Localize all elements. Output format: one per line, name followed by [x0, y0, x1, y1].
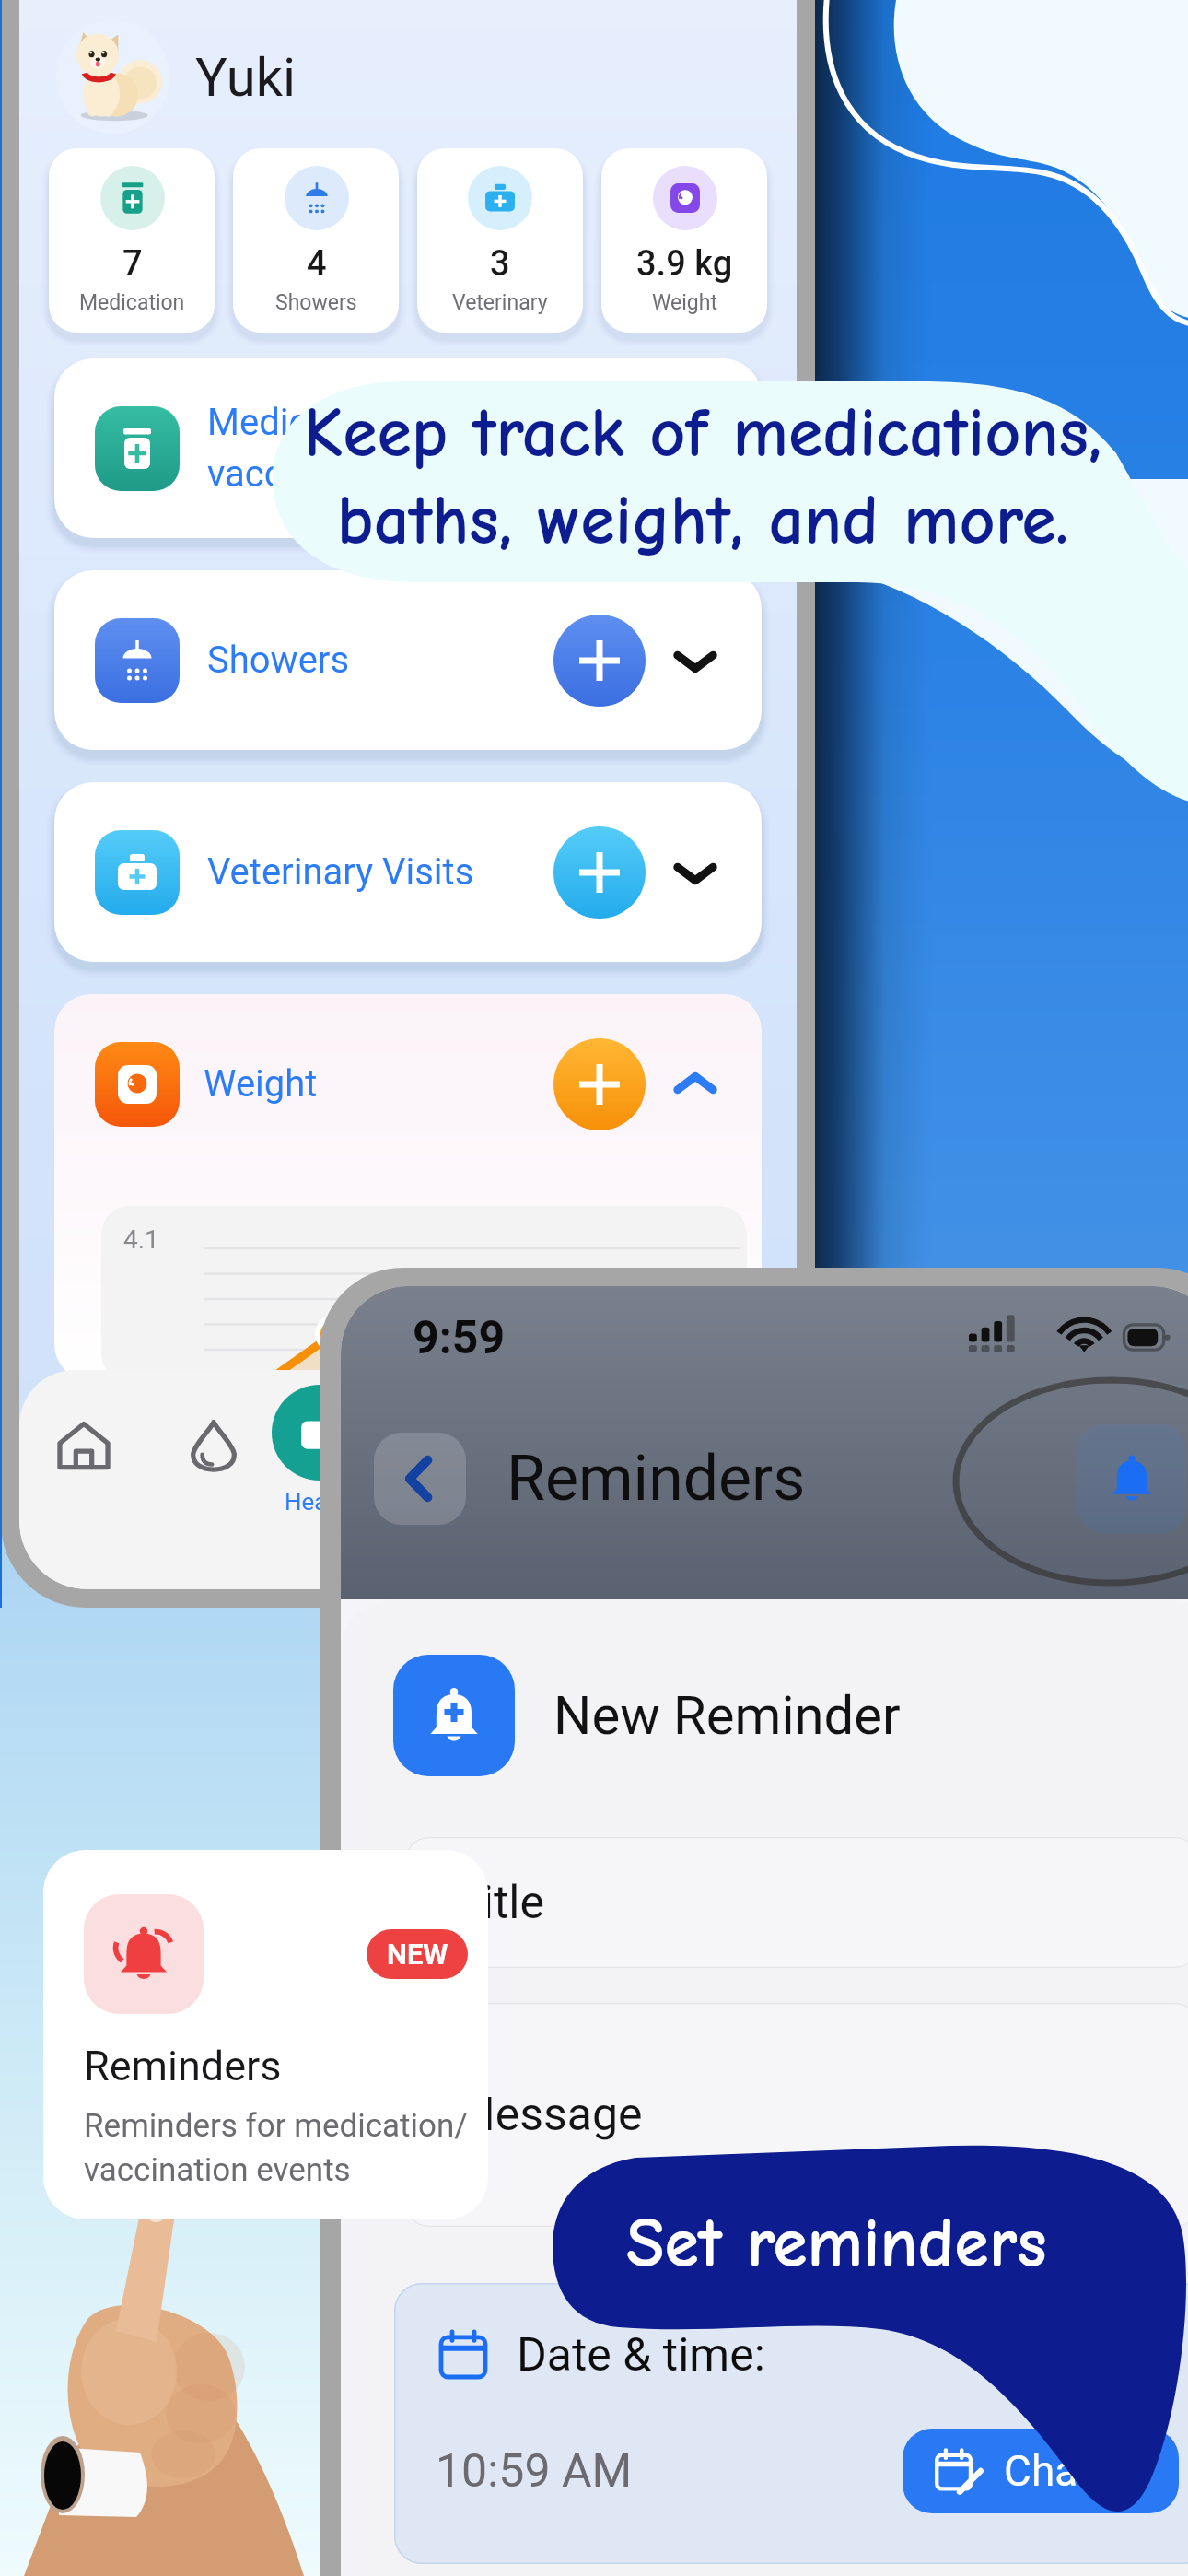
button[interactable]: Add weight	[553, 1038, 646, 1130]
staticText: Veterinary	[452, 290, 548, 315]
staticText: 4.1	[123, 1224, 159, 1255]
button[interactable]: Water	[158, 1390, 269, 1501]
staticText: Showers	[207, 638, 350, 682]
button[interactable]: Change	[934, 2429, 1147, 2513]
button[interactable]: Food	[418, 1390, 529, 1501]
button[interactable]: Back	[374, 1433, 466, 1525]
button[interactable]: 4	[233, 148, 399, 333]
button[interactable]: NEW	[43, 1850, 488, 2219]
staticText: Veterinary Visits	[207, 850, 474, 894]
staticText: Medication/ vaccination	[207, 401, 406, 496]
button[interactable]: Add	[553, 826, 646, 919]
staticText: Reminders for medication/ vaccination ev…	[84, 2107, 468, 2189]
button[interactable]: Weight	[54, 994, 762, 1381]
staticText: Message	[455, 2088, 643, 2142]
staticText: 4	[307, 243, 327, 285]
staticText: Showers	[275, 290, 357, 315]
staticText: Reminders	[84, 2042, 282, 2090]
button[interactable]: Notifications	[1077, 1424, 1186, 1533]
staticText: Medication	[79, 290, 185, 315]
staticText: 7	[122, 243, 143, 285]
staticText: NEW	[387, 1938, 448, 1971]
staticText: New Reminder	[553, 1684, 901, 1747]
button[interactable]: Showers	[54, 570, 762, 750]
button[interactable]: Medication/ vaccination	[54, 358, 762, 538]
staticText: Reminders	[507, 1442, 806, 1516]
staticText: Title	[455, 1876, 545, 1930]
button[interactable]: Add	[553, 615, 646, 707]
staticText: 3.9 kg	[636, 243, 733, 285]
staticText: Yuki	[195, 46, 297, 109]
button[interactable]: 3.9 kg	[601, 148, 767, 333]
staticText: Weight	[204, 1062, 318, 1106]
button[interactable]: Home	[29, 1390, 139, 1501]
button[interactable]: Title	[405, 1837, 1188, 1968]
staticText: 3	[490, 243, 510, 285]
staticText: 9:59	[413, 1311, 506, 1365]
button[interactable]: Health	[272, 1385, 367, 1516]
staticText: Health	[285, 1488, 355, 1516]
staticText: Date & time:	[517, 2328, 765, 2383]
staticText: Change	[1004, 2446, 1147, 2496]
button[interactable]: Veterinary Visits	[54, 782, 762, 962]
button[interactable]: Expand	[664, 629, 727, 692]
staticText: Keep track of medications, baths, weight…	[256, 393, 1149, 561]
button[interactable]: More	[548, 1390, 658, 1501]
button[interactable]: 7	[49, 148, 215, 333]
staticText: Weight	[652, 290, 717, 315]
button[interactable]: 3	[417, 148, 583, 333]
staticText: Set reminders	[626, 2204, 1047, 2284]
button[interactable]: Message	[405, 2003, 1188, 2227]
button[interactable]: Expand	[664, 841, 727, 904]
button[interactable]: Collapse	[664, 1053, 727, 1116]
button[interactable]: Date & time:	[394, 2283, 1188, 2564]
staticText: 10:59 AM	[436, 2444, 633, 2499]
